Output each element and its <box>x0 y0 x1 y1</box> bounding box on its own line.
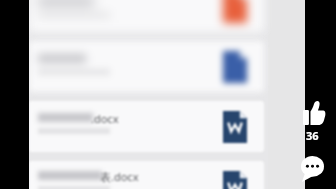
button[interactable]: 表.docx <box>29 161 264 189</box>
button[interactable]: Comment <box>301 156 324 182</box>
button[interactable]: .docx <box>29 101 264 152</box>
button[interactable] <box>29 0 264 32</box>
button[interactable] <box>29 41 264 92</box>
staticText: 表.docx <box>100 169 139 184</box>
staticText: .docx <box>91 111 119 126</box>
staticText: 36 <box>306 128 319 143</box>
button[interactable]: Like <box>303 100 325 125</box>
